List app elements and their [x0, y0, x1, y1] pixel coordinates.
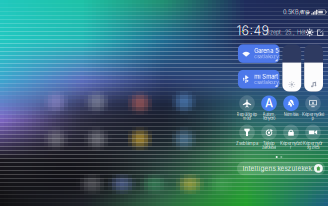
button[interactable]: Repülőgép: [236, 95, 258, 125]
button[interactable]: Némítás: [280, 95, 302, 125]
staticText: Képernyőké: [302, 112, 324, 117]
button[interactable]: Képernyőző: [280, 124, 302, 154]
button[interactable]: mi Smart Ban: [238, 70, 279, 88]
button[interactable]: [304, 44, 323, 91]
button[interactable]: [282, 44, 301, 91]
staticText: Repülőgép: [236, 112, 257, 117]
button[interactable]: Garena 5G: [238, 44, 279, 63]
staticText: Szept. 25., Hét: [266, 29, 306, 36]
staticText: p: [311, 116, 314, 121]
button[interactable]: Képernyőké: [302, 95, 324, 125]
button[interactable]: Settings: [304, 26, 316, 38]
button[interactable]: Tájkép: [258, 124, 280, 154]
staticText: Zseblámpa: [236, 141, 258, 146]
staticText: Képernyőr: [303, 141, 323, 146]
staticText: zárolása: [262, 145, 276, 150]
staticText: mód: [242, 116, 251, 121]
staticText: csatlakozva: [254, 79, 282, 85]
staticText: Képernyőző: [280, 141, 302, 146]
staticText: Némítás: [283, 112, 298, 117]
staticText: 16:49: [237, 23, 270, 38]
staticText: A: [265, 96, 273, 110]
staticText: 0.5KB/mp: [283, 9, 309, 16]
button[interactable]: A: [258, 95, 280, 125]
staticText: Autom.: [262, 112, 275, 117]
button[interactable]: Zseblámpa: [236, 124, 258, 154]
staticText: ögzítés: [306, 145, 319, 150]
button[interactable]: Edit: [314, 26, 326, 38]
button[interactable]: Képernyőr: [302, 124, 324, 154]
staticText: r: [290, 145, 292, 150]
staticText: csatlakozva: [254, 54, 282, 59]
staticText: Intelligens készülékek: [242, 165, 312, 172]
staticText: fényerő: [263, 116, 275, 121]
staticText: mi Smart Ban: [254, 73, 291, 80]
staticText: Tájkép: [263, 141, 275, 146]
staticText: Garena 5G: [254, 47, 283, 54]
button[interactable]: Intelligens készülékek: [237, 162, 325, 175]
